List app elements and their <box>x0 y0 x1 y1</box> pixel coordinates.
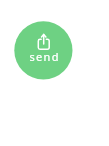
staticText: send <box>16 49 74 107</box>
button[interactable]: send <box>14 21 72 79</box>
